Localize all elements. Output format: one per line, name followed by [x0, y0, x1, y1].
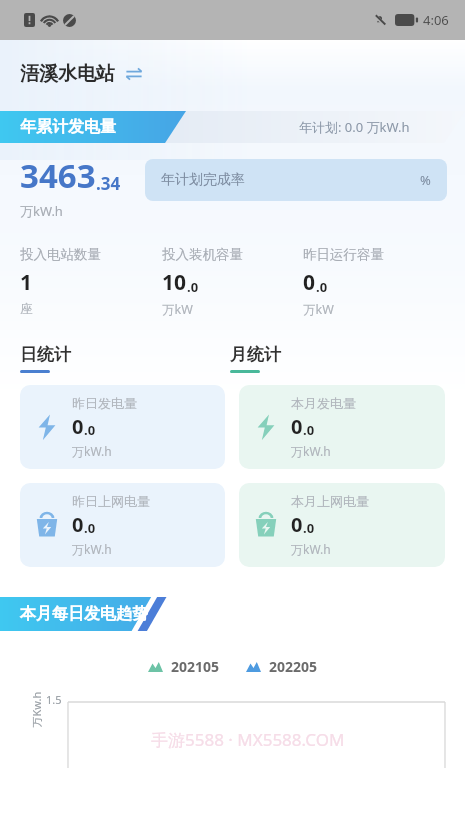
staticText: 昨日发电量 [72, 395, 137, 411]
staticText: 3463 [20, 153, 96, 198]
staticText: 年累计发电量 [20, 117, 116, 137]
staticText: .0 [187, 278, 199, 296]
staticText: 1 [20, 268, 33, 297]
staticText: 月统计 [230, 344, 281, 365]
staticText: .0 [84, 519, 96, 537]
staticText: 座 [20, 301, 33, 317]
button[interactable]: 投入装机容量 [162, 246, 303, 318]
button[interactable]: 202205 [246, 657, 318, 676]
staticText: .0 [303, 519, 315, 537]
staticText: 0 [291, 511, 303, 538]
staticText: .34 [96, 172, 121, 195]
staticText: 202205 [269, 657, 318, 676]
button[interactable]: 本月上网电量 [239, 483, 445, 567]
staticText: 万kW.h [291, 541, 331, 557]
staticText: 本月发电量 [291, 395, 356, 411]
staticText: .0 [84, 421, 96, 439]
staticText: 本月每日发电趋势 [20, 604, 148, 624]
staticText: 1.5 [46, 692, 62, 707]
staticText: 浯溪水电站 [20, 62, 115, 86]
staticText: 年计划: 0.0 万kW.h [299, 118, 410, 136]
staticText: 万kW [303, 301, 334, 318]
button[interactable]: 202105 [148, 657, 220, 676]
staticText: 年计划完成率 [161, 171, 245, 189]
staticText: 万kW.h [72, 541, 112, 557]
staticText: 本月上网电量 [291, 493, 369, 509]
staticText: 202105 [171, 657, 220, 676]
button[interactable]: 本月发电量 [239, 385, 445, 469]
staticText: 万kW.h [20, 202, 63, 220]
staticText: 投入装机容量 [162, 246, 243, 263]
staticText: 4:06 [423, 11, 449, 29]
staticText: 万kW [162, 301, 193, 318]
staticText: 0 [72, 511, 84, 538]
staticText: 昨日运行容量 [303, 246, 384, 263]
staticText: 0 [72, 413, 84, 440]
staticText: 投入电站数量 [20, 246, 101, 263]
button[interactable]: 年计划完成率 [145, 159, 447, 201]
staticText: 万Kw.h [28, 691, 43, 727]
staticText: 万kW.h [72, 443, 112, 459]
button[interactable]: 昨日发电量 [20, 385, 225, 469]
staticText: % [420, 171, 431, 189]
staticText: .0 [316, 278, 328, 296]
button[interactable]: 切换电站 [124, 64, 144, 84]
staticText: 手游5588 · MX5588.COM [151, 728, 345, 751]
staticText: 日统计 [20, 344, 71, 365]
staticText: 0 [303, 268, 316, 297]
button[interactable]: 日统计 [20, 344, 230, 373]
staticText: 万kW.h [291, 443, 331, 459]
staticText: .0 [303, 421, 315, 439]
staticText: 10 [162, 268, 187, 297]
button[interactable]: 月统计 [230, 344, 281, 373]
staticText: 0 [291, 413, 303, 440]
staticText: 昨日上网电量 [72, 493, 150, 509]
button[interactable]: 投入电站数量 [20, 246, 162, 317]
button[interactable]: 浯溪水电站 [20, 62, 465, 86]
button[interactable]: 昨日运行容量 [303, 246, 451, 318]
button[interactable]: 昨日上网电量 [20, 483, 225, 567]
